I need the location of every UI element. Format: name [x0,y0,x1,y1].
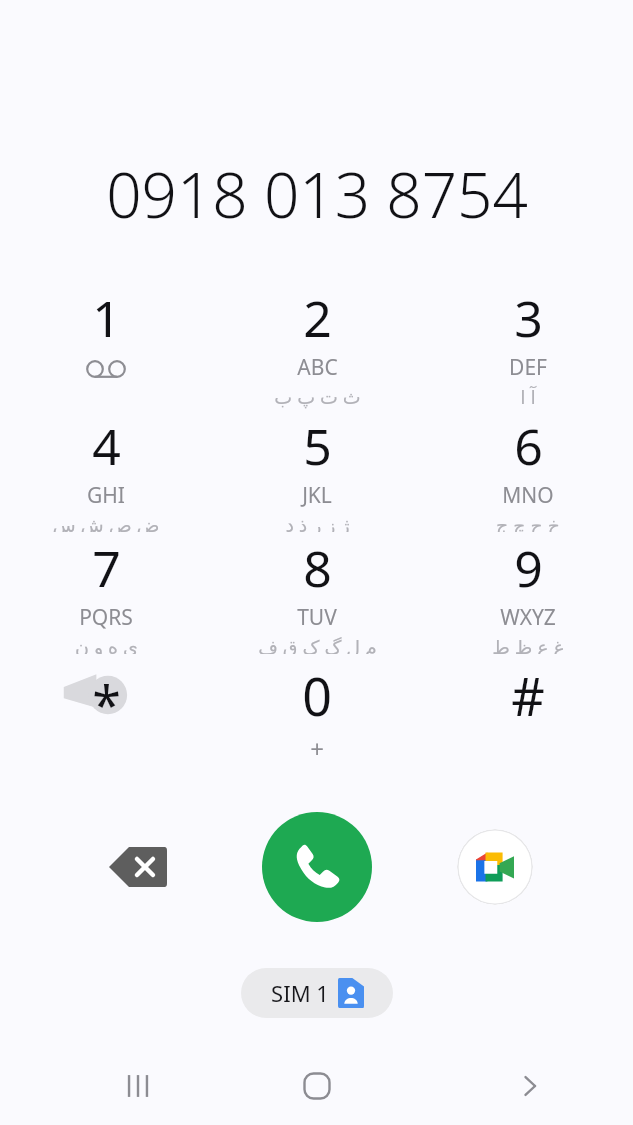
staticText: JKL [302,481,332,510]
staticText: 0 [302,660,332,731]
button[interactable]: Video call with Google Meet [457,829,533,905]
staticText: غ ع ظ ط [492,634,565,654]
staticText: آ ا [520,384,536,410]
staticText: PQRS [79,603,133,632]
staticText: 3 [514,284,543,352]
button[interactable]: SIM 1 [241,968,393,1018]
staticText: ض ص ش س [52,512,160,532]
staticText: خ ح چ ج [496,512,560,532]
button[interactable]: 2 [242,284,392,410]
staticText: SIM 1 [271,978,329,1008]
button[interactable]: 7 [31,534,181,654]
button[interactable]: Home [277,1047,357,1125]
staticText: WXYZ [500,603,556,632]
staticText: 2 [303,284,332,352]
staticText: GHI [87,481,125,510]
staticText: 8 [303,534,332,602]
button[interactable]: 8 [242,534,392,654]
button[interactable]: 3 [453,284,603,410]
button[interactable]: # [453,660,603,731]
staticText: 1 [92,284,121,352]
staticText: ABC [297,353,338,382]
staticText: # [511,660,545,731]
staticText: 7 [92,534,121,602]
button[interactable]: * [51,668,161,739]
staticText: 4 [92,412,121,480]
staticText: 0918 013 8754 [106,152,528,234]
staticText: 6 [514,412,543,480]
button[interactable]: Back [490,1047,570,1125]
staticText: DEF [509,353,547,382]
button[interactable]: Call [262,812,372,922]
button[interactable]: 5 [242,412,392,532]
staticText: * [92,668,121,739]
staticText: م ل گ ک ق ف [258,634,377,654]
staticText: + [310,732,324,764]
staticText: MNO [502,481,554,510]
staticText: ی ه و ن [75,634,138,654]
button[interactable]: 6 [453,412,603,532]
staticText: 5 [303,412,332,480]
staticText: 9 [514,534,543,602]
button[interactable]: 9 [453,534,603,654]
button[interactable]: 0 [242,660,392,764]
button[interactable]: 1 [31,284,181,378]
button[interactable]: Recent apps [98,1047,178,1125]
button[interactable]: Backspace [80,819,196,915]
button[interactable]: 4 [31,412,181,532]
staticText: TUV [297,603,337,632]
staticText: ژ ز ر ذ د [285,512,350,532]
staticText: ث ت پ ب [274,384,361,410]
